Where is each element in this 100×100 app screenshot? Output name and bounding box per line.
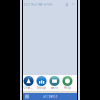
button[interactable]: Channel: [23, 75, 34, 91]
button[interactable]: Event: [49, 75, 60, 91]
button[interactable]: Back: [23, 0, 26, 9]
staticText: It's Your Mail Service: [26, 3, 53, 6]
button[interactable]: Get Started: [23, 93, 77, 100]
button[interactable]: Help: [62, 75, 73, 91]
button[interactable]: Group: [36, 75, 47, 91]
staticText: Help: [64, 86, 71, 89]
button[interactable]: More: [71, 0, 75, 9]
staticText: Get Started: [42, 95, 57, 98]
staticText: Channel: [23, 86, 34, 89]
staticText: Group: [37, 86, 46, 89]
staticText: Event: [51, 86, 58, 89]
button[interactable]: Account: [65, 0, 69, 9]
